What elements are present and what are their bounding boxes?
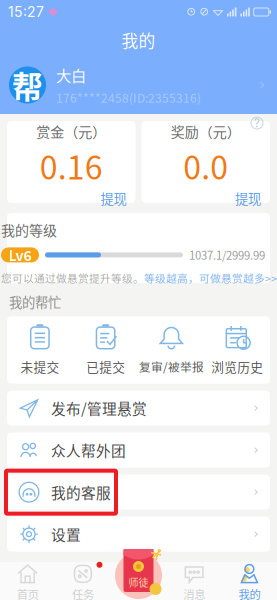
- staticText: 任务: [72, 586, 94, 600]
- button[interactable]: 消息: [166, 562, 222, 600]
- staticText: 176****2458(ID:2355316): [56, 89, 201, 106]
- staticText: 我的等级: [1, 219, 57, 240]
- staticText: 未提交: [20, 357, 59, 376]
- staticText: 等级越高，可做悬赏越多>>: [144, 270, 277, 285]
- staticText: 15:27: [8, 3, 44, 20]
- button[interactable]: 我的: [222, 562, 277, 600]
- staticText: 0.0: [183, 142, 228, 189]
- staticText: 赏金（元）: [36, 121, 106, 141]
- staticText: 复审/被举报: [139, 358, 204, 375]
- staticText: 首页: [17, 586, 39, 600]
- button[interactable]: 未提交: [7, 316, 73, 384]
- staticText: 1037.1/2999.99: [189, 247, 265, 263]
- staticText: 我的帮忙: [9, 292, 61, 311]
- staticText: 已提交: [86, 357, 125, 376]
- staticText: 众人帮外团: [51, 439, 126, 461]
- button[interactable]: 帮: [0, 57, 277, 113]
- button[interactable]: 众人帮外团: [7, 433, 270, 468]
- staticText: 我的客服: [51, 481, 111, 503]
- staticText: 浏览历史: [211, 357, 263, 376]
- button[interactable]: 已提交: [73, 316, 139, 384]
- staticText: Lv6: [8, 245, 31, 265]
- button[interactable]: 师徒: [112, 549, 164, 599]
- staticText: 我的: [238, 586, 260, 600]
- button[interactable]: 首页: [0, 562, 55, 600]
- staticText: 0.16: [40, 142, 103, 189]
- staticText: 消息: [183, 586, 205, 600]
- staticText: 提现: [235, 189, 261, 208]
- staticText: 我的: [121, 28, 155, 52]
- staticText: 发布/管理悬赏: [51, 397, 147, 419]
- staticText: 奖励（元）: [171, 121, 241, 141]
- button[interactable]: 提现: [7, 189, 135, 214]
- button[interactable]: 复审/被举报: [138, 317, 204, 383]
- button[interactable]: 提现: [141, 189, 270, 214]
- staticText: 帮: [12, 63, 43, 107]
- staticText: 设置: [51, 523, 81, 545]
- button[interactable]: 设置: [7, 517, 270, 552]
- staticText: 您可以通过做悬赏提升等级。: [1, 270, 144, 285]
- button[interactable]: 我的客服: [7, 475, 270, 510]
- staticText: 大白: [56, 64, 86, 86]
- staticText: 师徒: [128, 575, 148, 589]
- button[interactable]: 任务: [55, 562, 110, 600]
- button[interactable]: 发布/管理悬赏: [7, 391, 270, 426]
- staticText: ?: [254, 116, 260, 130]
- staticText: 提现: [100, 189, 126, 208]
- button[interactable]: 浏览历史: [204, 316, 270, 384]
